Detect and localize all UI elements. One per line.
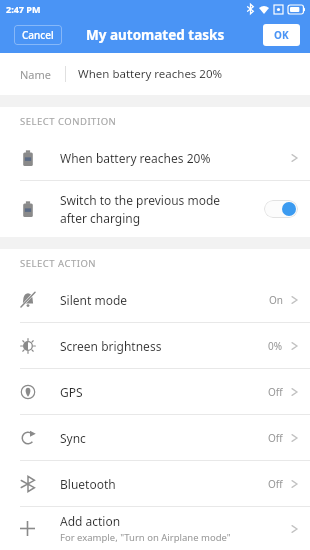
other: GPS: [20, 384, 36, 400]
staticText: Bluetooth: [60, 476, 268, 492]
other: Sync: [20, 430, 36, 446]
staticText: For example, "Turn on Airplane mode": [60, 531, 231, 544]
button[interactable]: Battery: [0, 135, 310, 180]
button[interactable]: Screen brightness: [0, 323, 310, 368]
staticText: When battery reaches 20%: [78, 66, 223, 82]
staticText: GPS: [60, 384, 268, 400]
staticText: Off: [268, 385, 283, 399]
staticText: Cancel: [22, 28, 54, 42]
staticText: after charging: [60, 210, 141, 226]
button[interactable]: Cancel: [14, 25, 62, 45]
staticText: Sync: [60, 430, 268, 446]
button[interactable]: Add action: [0, 507, 310, 550]
staticText: Off: [268, 477, 283, 491]
other: Silent mode: [20, 292, 36, 308]
button[interactable]: Silent mode: [0, 277, 310, 322]
staticText: SELECT ACTION: [20, 257, 97, 270]
staticText: SELECT CONDITION: [20, 115, 117, 128]
button[interactable]: Name: [0, 53, 310, 95]
button[interactable]: OK: [263, 24, 300, 46]
staticText: OK: [274, 28, 289, 42]
staticText: Name: [20, 67, 65, 82]
other: Screen brightness: [20, 338, 36, 354]
staticText: 2:47 PM: [6, 3, 41, 15]
button[interactable]: Bluetooth: [0, 461, 310, 506]
staticText: Off: [268, 431, 283, 445]
button[interactable]: Battery: [0, 181, 310, 237]
staticText: Screen brightness: [60, 338, 268, 354]
button[interactable]: GPS: [0, 369, 310, 414]
button[interactable]: Switch to previous mode toggle: [264, 200, 298, 218]
staticText: Switch to the previous mode: [60, 192, 221, 208]
staticText: Silent mode: [60, 292, 269, 308]
staticText: 0%: [268, 339, 283, 353]
other: Bluetooth: [20, 476, 36, 492]
other: Battery: [20, 150, 36, 166]
staticText: When battery reaches 20%: [60, 150, 291, 166]
staticText: Add action: [60, 513, 121, 529]
staticText: My automated tasks: [86, 26, 225, 44]
button[interactable]: Sync: [0, 415, 310, 460]
staticText: On: [269, 293, 283, 307]
other: Battery: [20, 201, 36, 217]
